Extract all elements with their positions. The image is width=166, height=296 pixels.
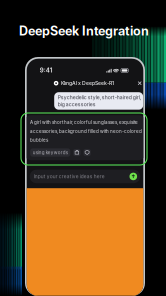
staticText: accessories, background filled with neon… xyxy=(30,129,142,134)
staticText: DeepSeek Integration xyxy=(19,23,149,39)
staticText: A girl with short hair, colorful sunglas… xyxy=(30,120,138,125)
staticText: big accessories xyxy=(58,101,96,108)
staticText: using keywords xyxy=(33,150,68,155)
staticText: Input your creative ideas here xyxy=(34,173,105,179)
staticText: KlingAI x DeepSeek-R1 xyxy=(61,80,114,86)
staticText: bubbles xyxy=(30,137,48,143)
staticText: 9:41 xyxy=(40,66,53,74)
staticText: Psychedelic style, short-haired girl, xyxy=(58,94,141,100)
